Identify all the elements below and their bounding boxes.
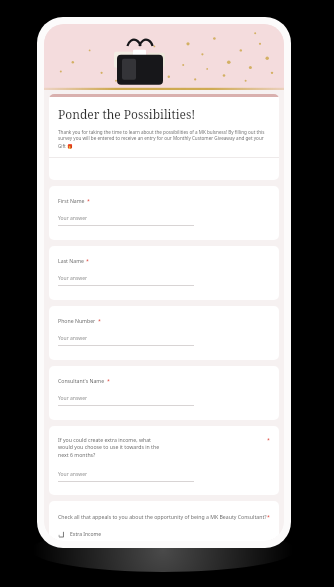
staticText: Thank you for taking the time to learn a… [58, 129, 270, 149]
staticText: Your answer [58, 275, 88, 282]
staticText: Your answer [58, 335, 88, 342]
staticText: Check all that appeals to you about the … [58, 513, 267, 520]
button[interactable]: Your answer [58, 275, 194, 286]
staticText: Your answer [58, 215, 88, 222]
staticText: Last Name [58, 257, 84, 264]
button[interactable]: First Name [49, 186, 279, 240]
staticText: Extra Income [70, 531, 102, 538]
staticText: * [86, 257, 89, 264]
button[interactable]: If you could create extra income, what w… [49, 426, 279, 495]
button[interactable]: Last Name [49, 246, 279, 300]
staticText: * [267, 436, 270, 443]
staticText: * [267, 513, 270, 520]
staticText: * [107, 377, 110, 384]
staticText: * [98, 317, 101, 324]
button[interactable]: Your answer [58, 215, 194, 226]
button[interactable]: Phone Number [49, 306, 279, 360]
staticText: If you could create extra income, what w… [58, 436, 162, 459]
button[interactable]: Your answer [58, 471, 194, 482]
staticText: Your answer [58, 471, 88, 478]
other: Extra Income [58, 531, 65, 538]
staticText: Phone Number [58, 317, 96, 324]
staticText: Ponder the Possibilities! [58, 106, 196, 122]
button[interactable]: Consultant's Name [49, 366, 279, 420]
button[interactable]: Your answer [58, 395, 194, 406]
staticText: Your answer [58, 395, 88, 402]
button[interactable]: Your answer [58, 335, 194, 346]
staticText: Consultant's Name [58, 377, 105, 384]
button[interactable]: Extra Income [58, 531, 270, 538]
staticText: * [87, 197, 90, 204]
staticText: First Name [58, 197, 85, 204]
